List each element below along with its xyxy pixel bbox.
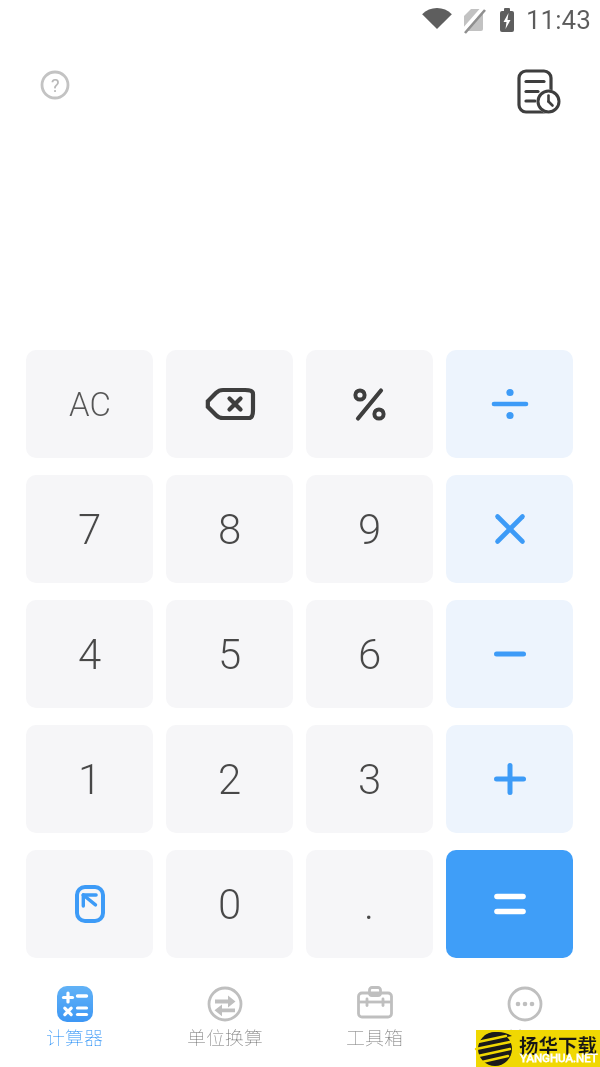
staticText: 5: [218, 630, 242, 679]
button[interactable]: 5: [166, 600, 293, 708]
button[interactable]: 关于: [450, 966, 600, 1067]
staticText: 3: [358, 755, 382, 804]
button[interactable]: [306, 350, 433, 458]
staticText: 1: [78, 755, 102, 804]
button[interactable]: [26, 850, 153, 958]
button[interactable]: 6: [306, 600, 433, 708]
staticText: 9: [358, 505, 382, 554]
button[interactable]: 工具箱: [300, 966, 450, 1067]
button[interactable]: AC: [26, 350, 153, 458]
button[interactable]: 1: [26, 725, 153, 833]
button[interactable]: 计算器: [0, 966, 150, 1067]
button[interactable]: 0: [166, 850, 293, 958]
button[interactable]: [446, 350, 573, 458]
staticText: AC: [69, 385, 111, 424]
staticText: 工具箱: [346, 1023, 404, 1051]
staticText: 7: [78, 505, 102, 554]
button[interactable]: 8: [166, 475, 293, 583]
button[interactable]: .: [306, 850, 433, 958]
staticText: 单位换算: [187, 1023, 264, 1051]
button[interactable]: ?: [38, 68, 72, 102]
staticText: 8: [218, 505, 242, 554]
button[interactable]: [446, 850, 573, 958]
staticText: 11:43: [526, 5, 591, 35]
button[interactable]: 2: [166, 725, 293, 833]
staticText: .: [364, 880, 375, 929]
staticText: 4: [78, 630, 102, 679]
button[interactable]: 7: [26, 475, 153, 583]
staticText: ?: [51, 75, 60, 96]
staticText: 扬华下载: [519, 1030, 598, 1058]
staticText: YANGHUA.NET: [520, 1051, 598, 1064]
staticText: 0: [218, 880, 242, 929]
button[interactable]: [513, 66, 561, 114]
button[interactable]: 单位换算: [150, 966, 300, 1067]
button[interactable]: 9: [306, 475, 433, 583]
button[interactable]: [446, 725, 573, 833]
button[interactable]: 3: [306, 725, 433, 833]
button[interactable]: 4: [26, 600, 153, 708]
button[interactable]: [166, 350, 293, 458]
staticText: 2: [218, 755, 242, 804]
staticText: 关于: [506, 1023, 545, 1051]
staticText: 计算器: [46, 1023, 104, 1051]
button[interactable]: [446, 600, 573, 708]
staticText: 6: [358, 630, 382, 679]
button[interactable]: [446, 475, 573, 583]
